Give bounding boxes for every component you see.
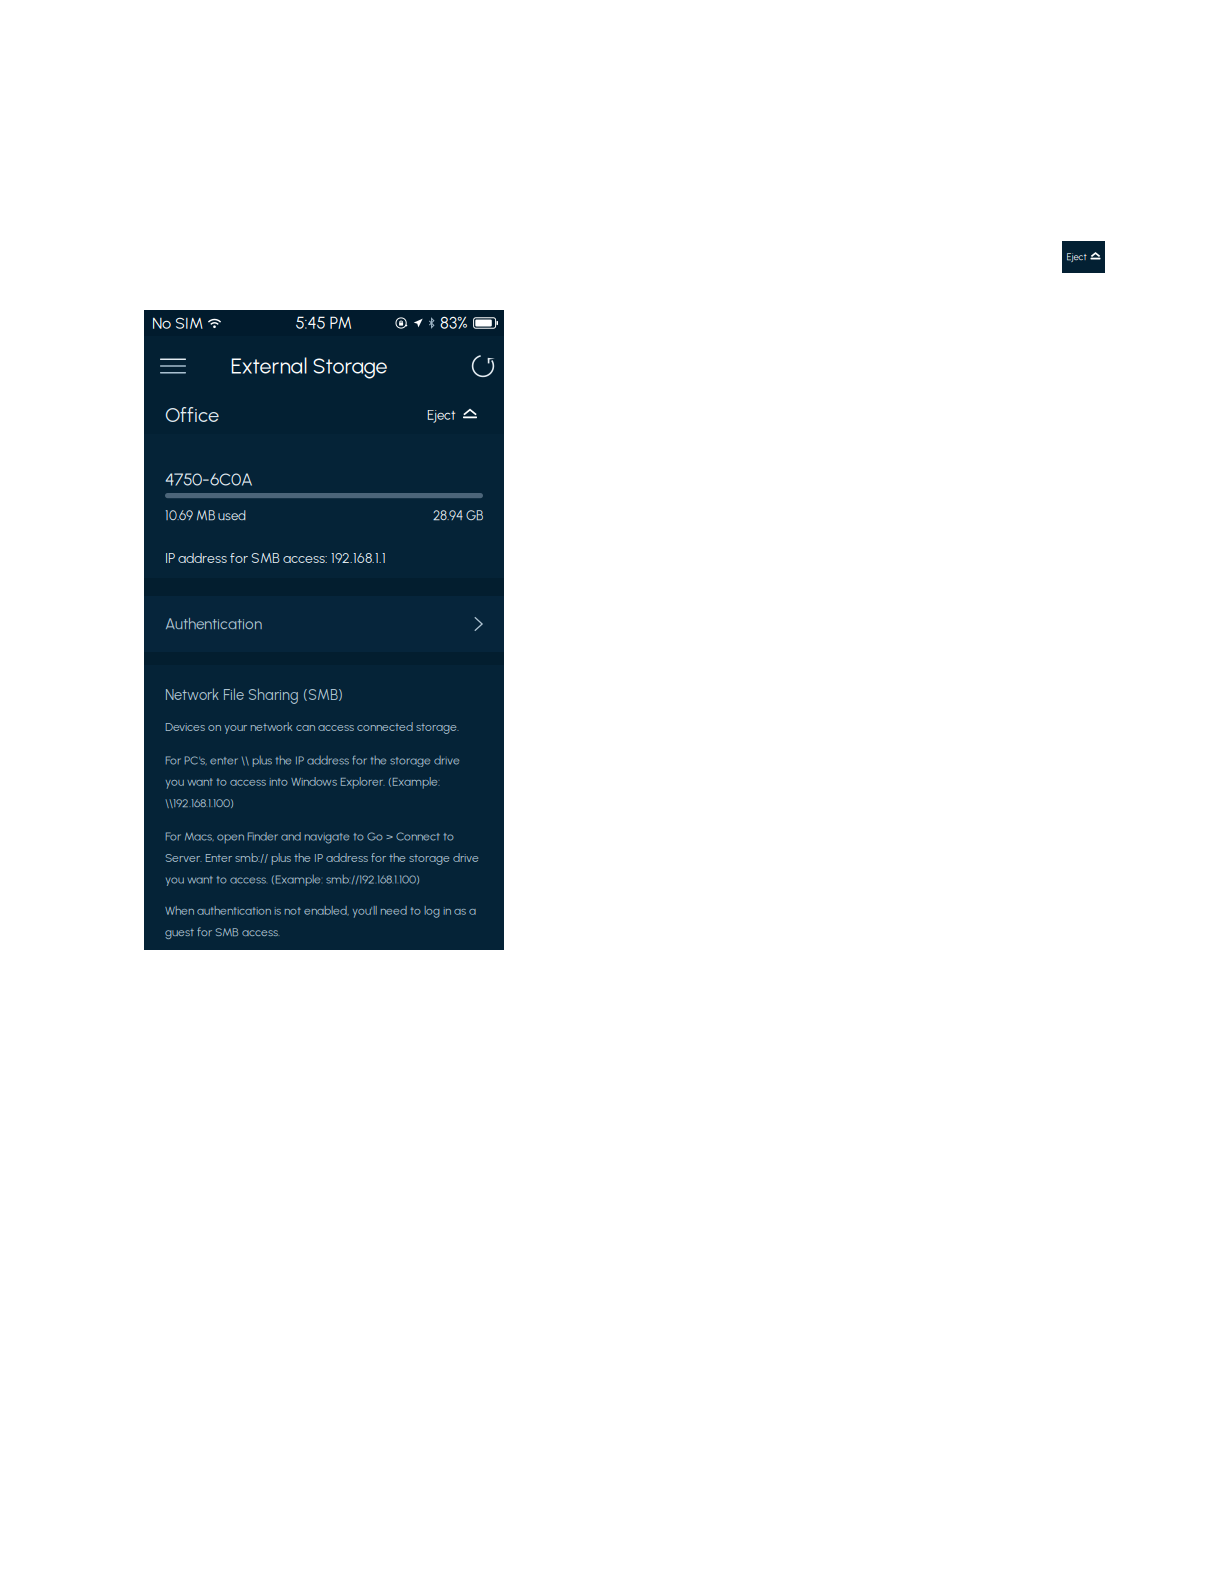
staticText: For Macs, open Finder and navigate to Go… bbox=[165, 829, 479, 886]
staticText: For PC's, enter \\ plus the IP address f… bbox=[165, 753, 460, 810]
button[interactable]: Refresh bbox=[457, 342, 509, 390]
staticText: Devices on your network can access conne… bbox=[165, 720, 459, 734]
staticText: IP address for SMB access: 192.168.1.1 bbox=[165, 550, 386, 567]
staticText: Network File Sharing (SMB) bbox=[165, 686, 343, 704]
staticText: 10.69 MB used bbox=[165, 508, 246, 524]
staticText: When authentication is not enabled, you'… bbox=[165, 903, 476, 939]
button[interactable]: Eject bbox=[1062, 241, 1105, 273]
button[interactable]: Authentication bbox=[144, 596, 504, 652]
staticText: 28.94 GB bbox=[433, 508, 483, 524]
staticText: 83% bbox=[440, 313, 468, 333]
button[interactable]: Eject bbox=[427, 407, 477, 423]
staticText: Eject bbox=[1066, 251, 1086, 263]
staticText: 4750-6C0A bbox=[165, 469, 253, 490]
staticText: Eject bbox=[427, 407, 456, 423]
staticText: External Storage bbox=[230, 353, 387, 379]
staticText: 5:45 PM bbox=[295, 313, 352, 333]
staticText: No SIM bbox=[152, 313, 203, 333]
staticText: Office bbox=[165, 403, 219, 427]
staticText: Authentication bbox=[165, 615, 262, 633]
button[interactable]: Menu bbox=[147, 342, 199, 390]
